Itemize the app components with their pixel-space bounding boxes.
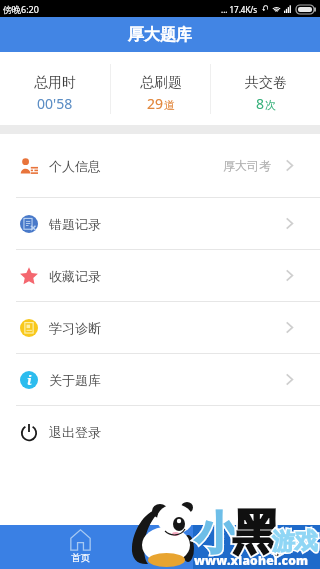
button[interactable]: 错题记录	[0, 198, 320, 249]
button[interactable]: i	[0, 354, 320, 405]
staticText: 总刷题	[140, 74, 182, 92]
staticText: 小	[195, 506, 239, 561]
staticText: 收藏记录	[49, 268, 101, 284]
staticText: 关于题库	[49, 372, 101, 388]
staticText: 黑	[232, 503, 280, 563]
staticText: 退出登录	[49, 424, 101, 440]
staticText: 00'58	[37, 94, 73, 113]
staticText: 小	[195, 506, 239, 561]
staticText: 29	[147, 94, 164, 113]
staticText: ... 17.4K/s	[221, 4, 258, 15]
button[interactable]: 收藏记录	[0, 250, 320, 301]
staticText: ⮏	[262, 2, 269, 16]
button[interactable]: 退出登录	[0, 406, 320, 458]
button[interactable]: 首页	[0, 525, 161, 569]
staticText: 游戏	[272, 527, 318, 556]
staticText: 厚大题库	[128, 25, 192, 45]
staticText: 8	[256, 94, 265, 113]
button[interactable]: 学习诊断	[0, 302, 320, 353]
staticText: 错题记录	[49, 216, 101, 232]
staticText: 首页	[71, 552, 90, 564]
staticText: 傍晚6:20	[3, 3, 39, 15]
staticText: www.xiaohei.com	[194, 552, 309, 568]
staticText: 次	[265, 98, 276, 112]
staticText: 个人信息	[49, 158, 101, 174]
staticText: i	[27, 371, 32, 389]
staticText: 学习诊断	[49, 320, 101, 336]
staticText: 游戏	[272, 527, 318, 556]
staticText: 总用时	[34, 74, 76, 92]
staticText: 共交卷	[245, 74, 287, 92]
staticText: 道	[164, 98, 175, 112]
staticText: 黑	[232, 503, 280, 563]
button[interactable]: 个人信息	[0, 134, 320, 197]
staticText: 厚大司考	[223, 158, 271, 173]
